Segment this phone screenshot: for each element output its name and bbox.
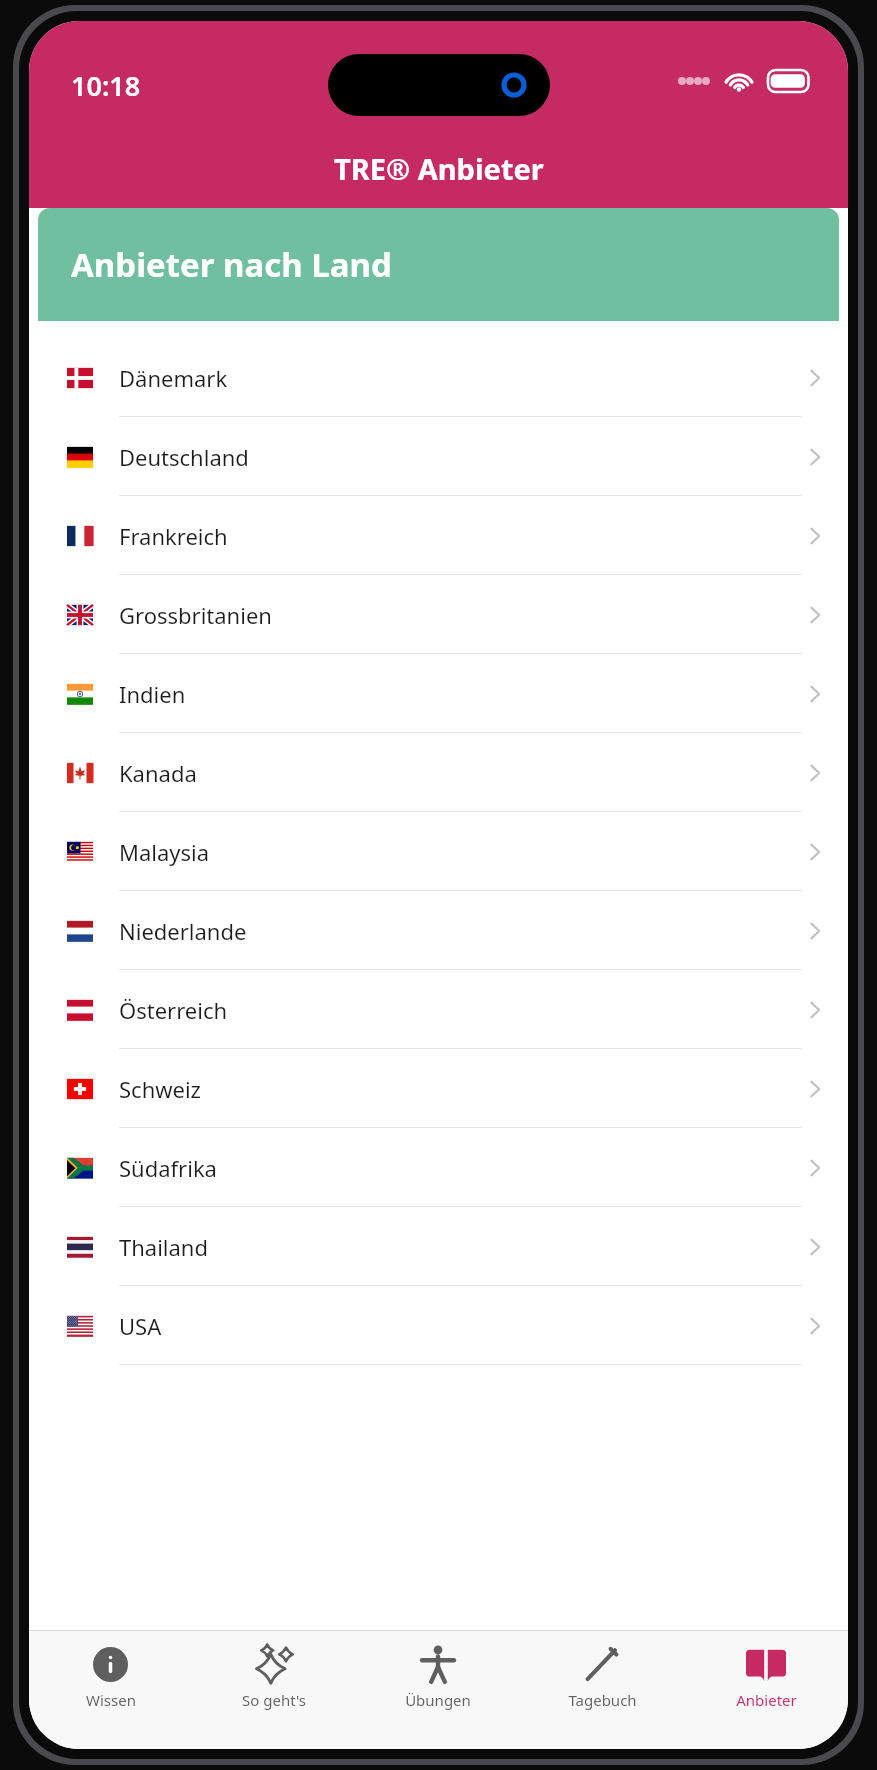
staticText: 10:18 [71,67,141,104]
staticText: Thailand [119,1232,208,1262]
button[interactable]: Anbieter [684,1630,848,1749]
staticText: USA [119,1311,162,1341]
staticText: Kanada [119,758,197,788]
staticText: Dänemark [119,363,228,393]
button[interactable]: Dänemark [29,338,848,417]
button[interactable]: Anbieter nach Land [38,208,839,321]
staticText: Wissen [86,1690,136,1710]
staticText: Deutschland [119,442,249,472]
staticText: TRE® Anbieter [334,149,544,188]
button[interactable]: So geht's [192,1630,356,1749]
button[interactable]: Malaysia [29,812,848,891]
button[interactable]: Tagebuch [520,1630,684,1749]
button[interactable]: Übungen [356,1630,520,1749]
button[interactable]: USA [29,1286,848,1365]
button[interactable]: Südafrika [29,1128,848,1207]
staticText: Frankreich [119,521,228,551]
staticText: Österreich [119,995,228,1025]
staticText: Niederlande [119,916,247,946]
staticText: So geht's [242,1690,306,1710]
staticText: Schweiz [119,1074,201,1104]
button[interactable]: Österreich [29,970,848,1049]
staticText: Anbieter [736,1690,797,1710]
button[interactable]: Niederlande [29,891,848,970]
button[interactable]: Grossbritanien [29,575,848,654]
button[interactable]: Wissen [29,1630,192,1749]
staticText: Übungen [405,1690,471,1710]
staticText: Tagebuch [568,1690,637,1710]
staticText: Anbieter nach Land [71,242,392,287]
staticText: Südafrika [119,1153,217,1183]
button[interactable]: Thailand [29,1207,848,1286]
button[interactable]: Schweiz [29,1049,848,1128]
staticText: Grossbritanien [119,600,272,630]
staticText: Indien [119,679,186,709]
button[interactable]: Indien [29,654,848,733]
button[interactable]: Kanada [29,733,848,812]
button[interactable]: Deutschland [29,417,848,496]
button[interactable]: Frankreich [29,496,848,575]
staticText: Malaysia [119,837,210,867]
